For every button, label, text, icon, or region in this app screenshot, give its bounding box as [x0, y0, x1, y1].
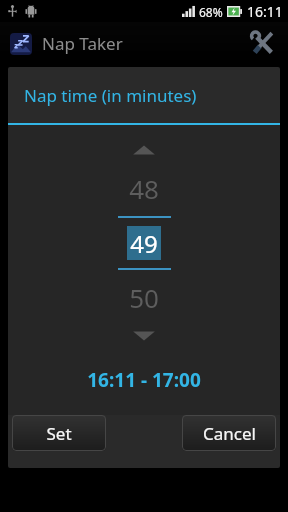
button[interactable]: 49	[127, 226, 161, 260]
button[interactable]: Settings	[242, 23, 282, 63]
button[interactable]: Increment	[114, 137, 174, 163]
staticText: 48	[129, 171, 159, 206]
staticText: 50	[129, 280, 159, 315]
staticText: Nap time (in minutes)	[24, 84, 197, 107]
staticText: Nap Taker	[42, 32, 123, 55]
staticText: 49	[130, 227, 158, 260]
button[interactable]: Cancel	[182, 415, 276, 451]
staticText: 16:11	[247, 2, 283, 21]
button[interactable]: Decrement	[114, 323, 174, 349]
staticText: Cancel	[203, 422, 256, 445]
button[interactable]: Set	[12, 415, 106, 451]
staticText: 16:11 - 17:00	[87, 367, 201, 393]
staticText: Set	[46, 422, 72, 445]
staticText: 68%	[199, 4, 223, 20]
